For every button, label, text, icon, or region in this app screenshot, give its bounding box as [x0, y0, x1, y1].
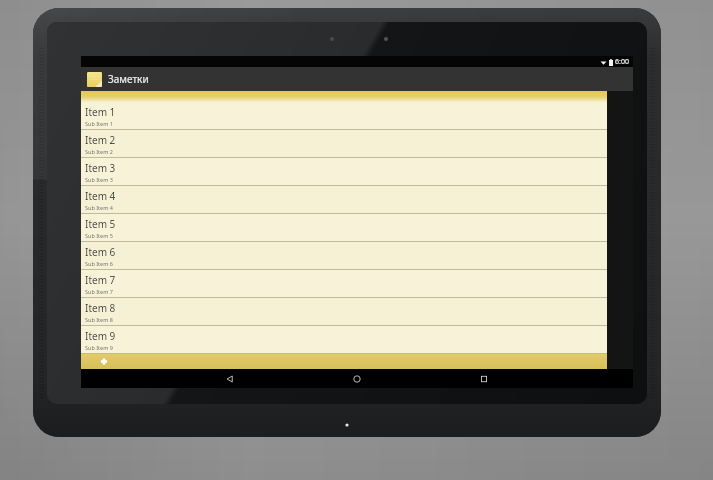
- staticText: Item 5: [85, 217, 116, 231]
- button[interactable]: Item 6: [81, 242, 607, 270]
- staticText: Sub Item 5: [85, 232, 113, 239]
- staticText: Item 3: [85, 161, 116, 175]
- button[interactable]: Item 7: [81, 270, 607, 298]
- staticText: Item 4: [85, 189, 116, 203]
- staticText: Item 6: [85, 245, 116, 259]
- button[interactable]: Item 2: [81, 130, 607, 158]
- button[interactable]: Item 3: [81, 158, 607, 186]
- button[interactable]: App icon: [87, 72, 102, 87]
- staticText: Sub Item 6: [85, 260, 113, 267]
- staticText: Item 7: [85, 273, 116, 287]
- button[interactable]: Item 5: [81, 214, 607, 242]
- button[interactable]: Item 1: [81, 102, 607, 130]
- staticText: Sub Item 8: [85, 316, 113, 323]
- button[interactable]: Home: [344, 369, 370, 388]
- staticText: Sub Item 2: [85, 148, 113, 155]
- button[interactable]: Recent apps: [471, 369, 497, 388]
- button[interactable]: Add note: [81, 354, 607, 369]
- staticText: Item 9: [85, 329, 116, 343]
- staticText: 6:00: [615, 57, 629, 67]
- button[interactable]: Back: [217, 369, 243, 388]
- staticText: Sub Item 7: [85, 288, 113, 295]
- button[interactable]: Item 9: [81, 326, 607, 354]
- staticText: Sub Item 4: [85, 204, 113, 211]
- button[interactable]: Item 8: [81, 298, 607, 326]
- staticText: Заметки: [108, 72, 149, 86]
- staticText: Item 1: [85, 105, 116, 119]
- staticText: Item 2: [85, 133, 116, 147]
- staticText: Sub Item 9: [85, 344, 113, 351]
- staticText: Sub Item 1: [85, 120, 113, 127]
- button[interactable]: Item 4: [81, 186, 607, 214]
- staticText: Sub Item 3: [85, 176, 113, 183]
- staticText: Item 8: [85, 301, 116, 315]
